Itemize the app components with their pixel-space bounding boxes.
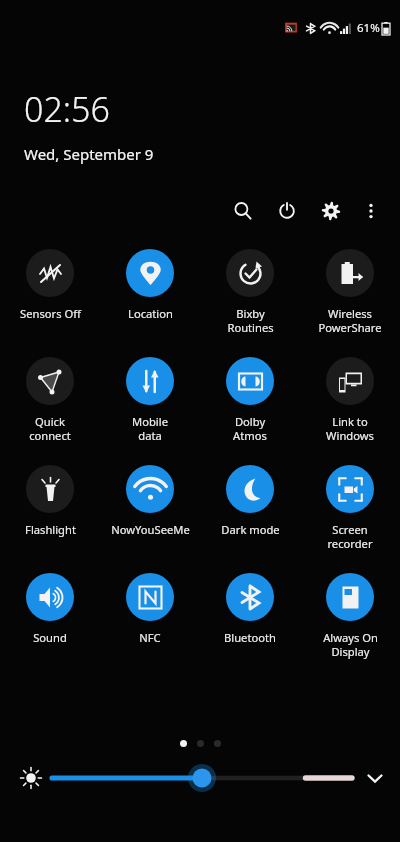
button[interactable]: Location	[104, 249, 196, 321]
staticText: Wireless PowerShare	[318, 306, 382, 335]
staticText: Wed, September 9	[24, 144, 154, 164]
staticText: Dolby Atmos	[233, 414, 267, 443]
button[interactable]: Dark mode	[204, 465, 296, 537]
staticText: NowYouSeeMe	[111, 522, 190, 537]
button[interactable]: Brightness	[52, 763, 352, 793]
button[interactable]: Dolby Atmos	[204, 357, 296, 443]
staticText: 61%	[357, 20, 380, 36]
button[interactable]: NFC	[104, 573, 196, 645]
staticText: Screen recorder	[327, 522, 373, 551]
staticText: Bluetooth	[224, 630, 276, 645]
button[interactable]: Search	[230, 198, 256, 224]
staticText: NFC	[139, 630, 161, 645]
button[interactable]: More options	[358, 198, 384, 224]
button[interactable]: Link to Windows	[304, 357, 396, 443]
staticText: Flashlight	[25, 522, 76, 537]
button[interactable]: Power off	[274, 198, 300, 224]
button[interactable]: Auto brightness	[16, 763, 46, 793]
button[interactable]: Settings	[318, 198, 344, 224]
button[interactable]: Sensors Off	[4, 249, 96, 321]
staticText: Quick connect	[29, 414, 71, 443]
button[interactable]: Sound	[4, 573, 96, 645]
button[interactable]: Bluetooth	[204, 573, 296, 645]
button[interactable]: Page 3	[214, 740, 221, 747]
button[interactable]: Page 1	[180, 740, 187, 747]
staticText: Sensors Off	[20, 306, 81, 321]
staticText: Always On Display	[323, 630, 378, 659]
staticText: Bixby Routines	[227, 306, 274, 335]
button[interactable]: Screen recorder	[304, 465, 396, 551]
button[interactable]: Expand brightness settings	[360, 763, 390, 793]
staticText: Link to Windows	[326, 414, 374, 443]
button[interactable]: Quick connect	[4, 357, 96, 443]
button[interactable]: Mobile data	[104, 357, 196, 443]
staticText: Sound	[33, 630, 67, 645]
button[interactable]: Always On Display	[304, 573, 396, 659]
staticText: Location	[128, 306, 173, 321]
staticText: Mobile data	[132, 414, 168, 443]
button[interactable]: Bixby Routines	[204, 249, 296, 335]
staticText: 02:56	[24, 86, 110, 132]
button[interactable]: Wireless PowerShare	[304, 249, 396, 335]
button[interactable]: Flashlight	[4, 465, 96, 537]
button[interactable]: NowYouSeeMe	[104, 465, 196, 537]
staticText: Dark mode	[221, 522, 280, 537]
button[interactable]: Page 2	[197, 740, 204, 747]
